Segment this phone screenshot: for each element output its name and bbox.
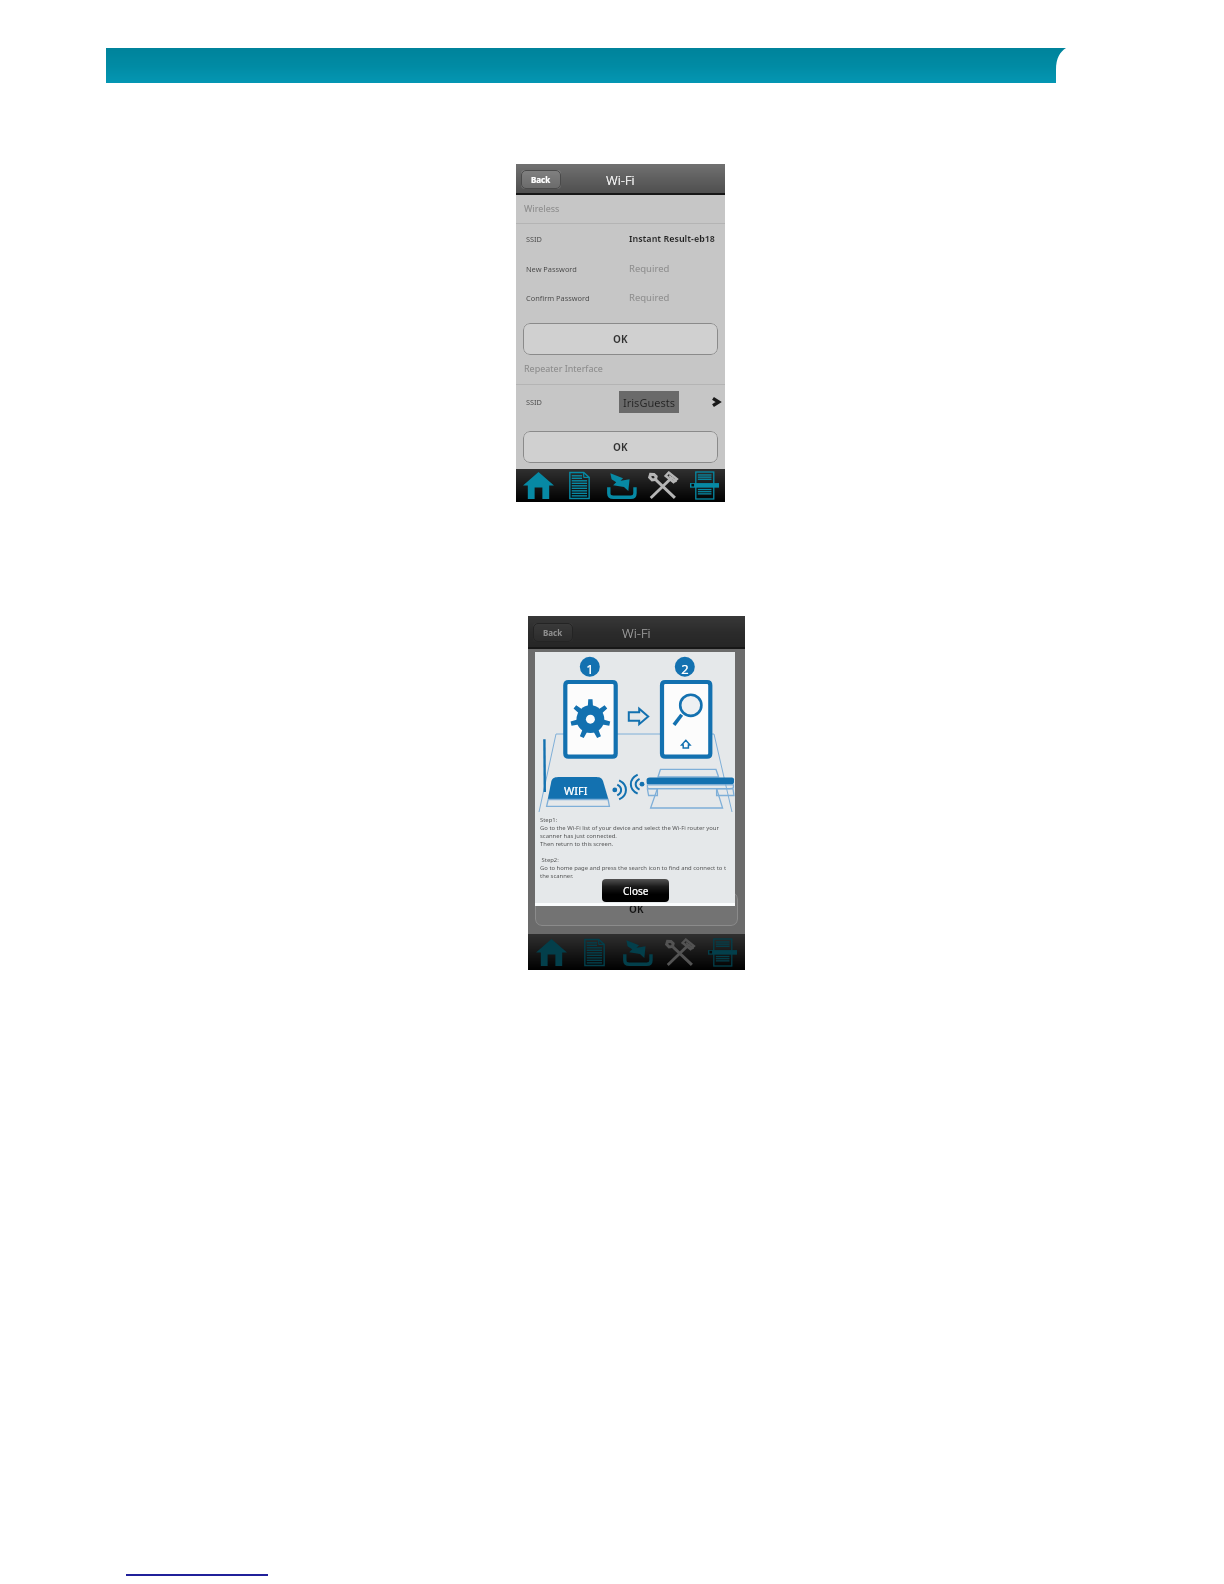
staticText: SSID xyxy=(526,397,543,407)
staticText: Back xyxy=(531,174,551,185)
staticText: Back xyxy=(543,627,563,638)
button[interactable]: SSID xyxy=(516,224,725,254)
button[interactable]: Documents xyxy=(574,934,614,970)
staticText: Wi-Fi xyxy=(622,624,651,642)
staticText: OK xyxy=(629,902,644,916)
button[interactable]: Scanner xyxy=(702,934,742,970)
staticText: Close xyxy=(623,884,649,898)
staticText: Step2: xyxy=(540,856,559,864)
staticText: Repeater Interface xyxy=(524,362,603,374)
staticText: SSID xyxy=(526,234,543,244)
staticText: Confirm Password xyxy=(526,293,590,303)
button[interactable]: Documents xyxy=(559,469,599,502)
button[interactable]: OK xyxy=(523,431,718,463)
staticText: scanner has just connected. xyxy=(540,832,617,840)
button[interactable]: Back xyxy=(521,170,561,189)
staticText: Step1: xyxy=(540,816,558,824)
staticText: Required xyxy=(629,262,670,275)
staticText: Then return to this screen. xyxy=(540,840,614,848)
staticText: Required xyxy=(629,291,670,304)
staticText: Go to home page and press the search ico… xyxy=(540,864,727,872)
staticText: IrisGuests xyxy=(623,395,675,410)
button[interactable]: Home xyxy=(518,469,558,502)
button[interactable]: Tools xyxy=(659,934,699,970)
button[interactable]: Scanner xyxy=(684,469,724,502)
button[interactable]: OK xyxy=(523,323,718,355)
staticText: the scanner. xyxy=(540,872,574,880)
button[interactable]: Download xyxy=(617,934,657,970)
button[interactable]: OK xyxy=(535,892,738,926)
button[interactable]: Back xyxy=(533,623,573,642)
staticText: 1 xyxy=(586,660,594,678)
button[interactable]: Tools xyxy=(642,469,682,502)
button[interactable]: Confirm Password xyxy=(516,283,725,312)
staticText: 2 xyxy=(681,660,689,678)
staticText: New Password xyxy=(526,264,577,274)
button[interactable]: Download xyxy=(601,469,641,502)
staticText: WIFI xyxy=(564,783,588,798)
staticText: Instant Result-eb18 xyxy=(629,233,715,245)
staticText: OK xyxy=(613,332,628,346)
staticText: Go to the Wi-Fi list of your device and … xyxy=(540,824,719,832)
staticText: Wi-Fi xyxy=(606,171,635,189)
button[interactable]: Close xyxy=(602,879,669,902)
staticText: OK xyxy=(613,440,628,454)
button[interactable]: Home xyxy=(531,934,571,970)
button[interactable]: New Password xyxy=(516,254,725,283)
button[interactable]: SSID xyxy=(516,385,725,420)
staticText: Wireless xyxy=(524,202,560,214)
